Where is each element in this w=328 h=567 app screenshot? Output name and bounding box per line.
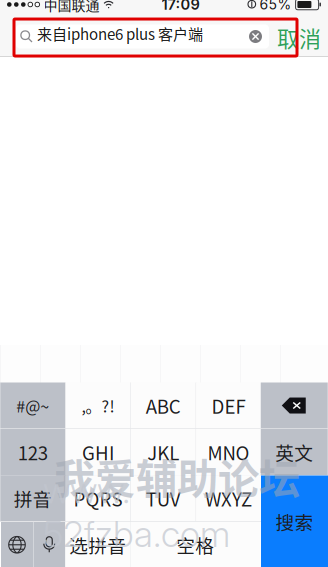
staticText: 拼音 xyxy=(14,485,52,512)
staticText: 选拼音 xyxy=(69,531,126,558)
staticText: JKL xyxy=(147,438,179,465)
staticText: 中国联通 xyxy=(44,0,100,15)
staticText: 17:09 xyxy=(162,0,200,13)
staticText: www.52fzba.com xyxy=(43,468,230,555)
staticText: 英文 xyxy=(275,438,313,465)
button[interactable]: 取消 xyxy=(279,25,328,49)
staticText: MNO xyxy=(207,438,249,465)
button[interactable]: GHI xyxy=(66,429,130,475)
button[interactable] xyxy=(33,522,65,567)
button[interactable]: 选拼音 xyxy=(65,522,130,567)
staticText: 123 xyxy=(18,438,48,465)
staticText: DEF xyxy=(211,392,245,419)
button[interactable]: 搜索 xyxy=(261,475,328,567)
button[interactable]: ABC xyxy=(131,382,196,428)
staticText: 65% xyxy=(260,0,292,13)
button[interactable]: Clear text xyxy=(249,30,269,43)
button[interactable]: TUV xyxy=(131,475,196,521)
button[interactable]: 123 xyxy=(0,429,65,475)
staticText: 来自iphone6 plus 客户端 xyxy=(37,23,203,44)
staticText: 取消 xyxy=(277,22,321,53)
staticText: ,。?! xyxy=(81,394,114,417)
staticText: #@~ xyxy=(16,394,49,417)
button[interactable]: 英文 xyxy=(261,429,328,475)
button[interactable]: PQRS xyxy=(66,475,130,521)
button[interactable] xyxy=(261,382,328,428)
button[interactable]: 空格 xyxy=(130,522,260,567)
staticText: 空格 xyxy=(176,531,214,558)
button[interactable]: JKL xyxy=(131,429,196,475)
button[interactable]: 拼音 xyxy=(0,475,65,521)
staticText: PQRS xyxy=(73,485,122,512)
button[interactable]: DEF xyxy=(196,382,261,428)
button[interactable]: #@~ xyxy=(0,382,65,428)
button[interactable] xyxy=(1,522,33,567)
button[interactable]: MNO xyxy=(196,429,261,475)
staticText: 搜索 xyxy=(275,508,313,535)
staticText: 我爱辅助论坛 xyxy=(54,446,300,506)
button[interactable]: WXYZ xyxy=(196,475,261,521)
staticText: ABC xyxy=(146,392,181,419)
staticText: TUV xyxy=(146,485,181,512)
button[interactable]: ,。?! xyxy=(66,382,130,428)
staticText: GHI xyxy=(82,438,114,465)
staticText: WXYZ xyxy=(205,485,252,512)
